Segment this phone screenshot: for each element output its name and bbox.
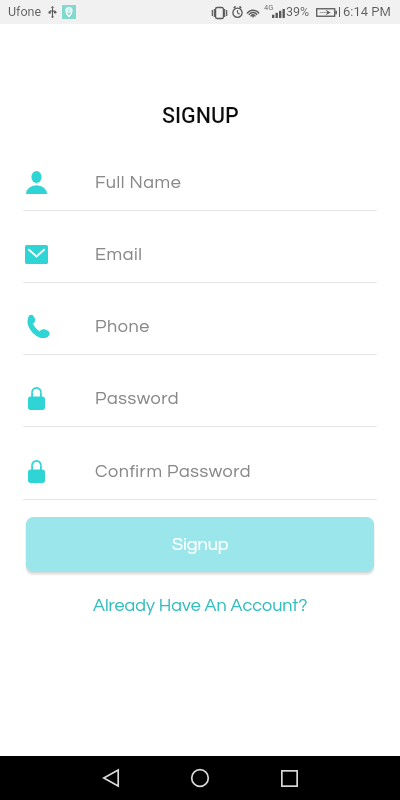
button[interactable]: Home [178,756,222,800]
button[interactable]: Back [89,756,133,800]
staticText: Phone [95,317,150,336]
staticText: Full Name [95,173,182,192]
staticText: SIGNUP [162,103,239,128]
button[interactable]: Email [0,236,400,272]
button[interactable]: SIGNUP [162,103,239,128]
staticText: 39% [286,4,310,19]
button[interactable]: Recents [267,756,311,800]
staticText: Email [95,245,143,264]
staticText: Already Have An Account? [93,596,308,615]
staticText: 4G [264,3,274,12]
button[interactable]: Confirm Password [0,453,400,489]
button[interactable]: Already Have An Account? [87,593,314,618]
staticText: Password [95,389,180,408]
button[interactable]: Full Name [0,164,400,200]
staticText: 6:14 PM [343,4,391,19]
button[interactable]: Password [0,380,400,416]
staticText: Confirm Password [95,462,252,481]
staticText: Signup [172,535,229,554]
staticText: Ufone [8,4,42,19]
button[interactable]: Signup [26,517,374,572]
button[interactable]: Phone [0,308,400,344]
